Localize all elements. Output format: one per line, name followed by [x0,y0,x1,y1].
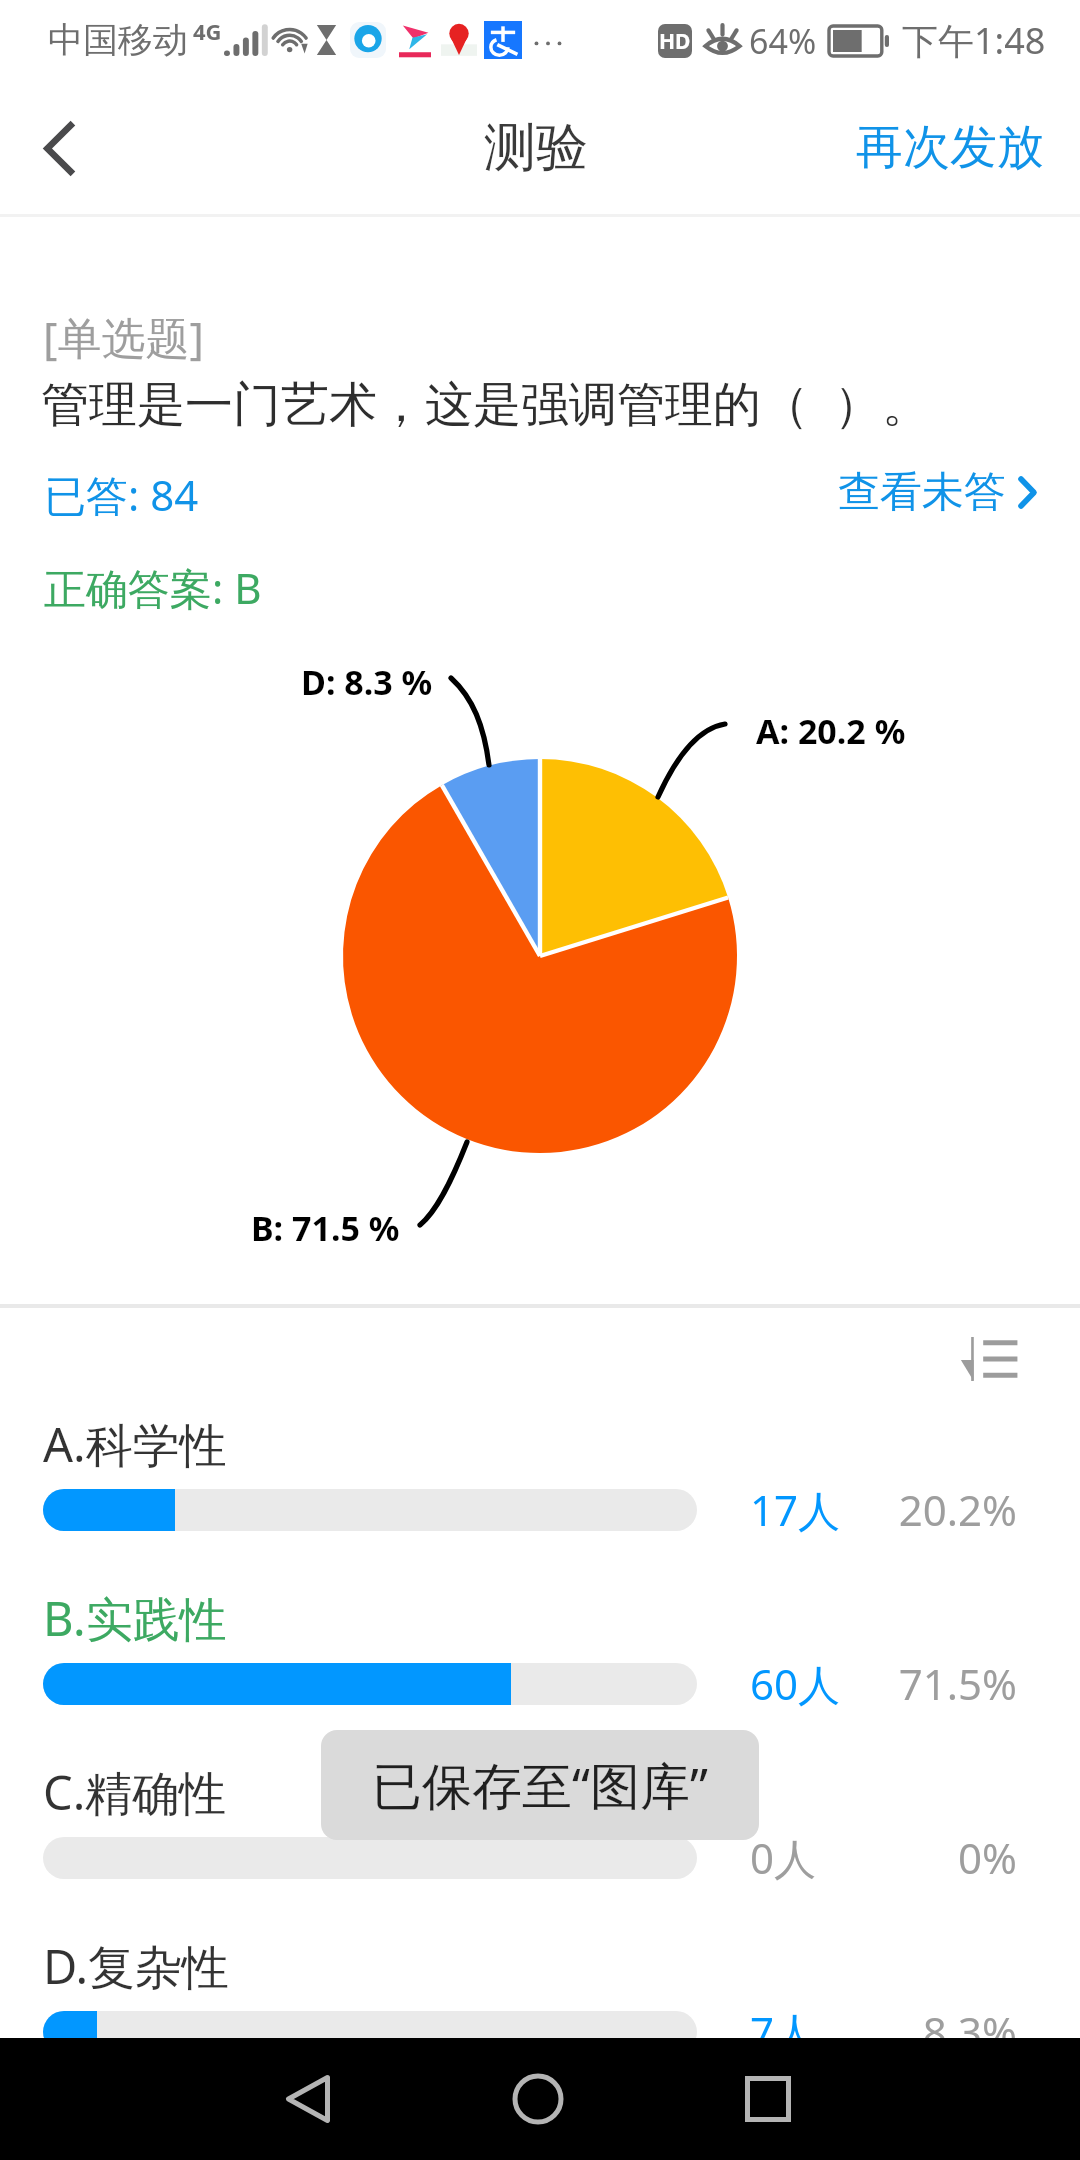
staticText: A.科学性 [43,1412,227,1476]
staticText: HD [659,27,691,56]
staticText: 7人 [750,2003,817,2060]
staticText: A: 20.2 % [756,708,906,754]
staticText: 0% [875,1829,1017,1886]
staticText: 查看未答 [838,466,1006,519]
staticText: 20.2% [875,1481,1017,1538]
staticText: 中国移动 [48,18,188,62]
staticText: B: 71.5 % [251,1205,400,1251]
button[interactable]: 再次发放 [850,112,1050,183]
button[interactable]: A.科学性 [0,1399,1080,1573]
staticText: 17人 [750,1481,841,1538]
staticText: 下午1:48 [902,16,1046,65]
staticText: 8.3% [875,2003,1017,2060]
staticText: 64% [749,18,817,64]
staticText: 已答: 84 [44,466,199,523]
button[interactable]: Home [483,2044,593,2154]
button[interactable]: Sort [958,1328,1020,1390]
staticText: 已保存至“图库” [372,1751,708,1819]
button[interactable]: C.精确性 [0,1747,1080,1921]
button[interactable]: Back [253,2044,363,2154]
staticText: D: 8.3 % [301,659,433,705]
staticText: 测验 [484,115,588,181]
staticText: 4G [193,16,222,46]
button[interactable]: Recents [713,2044,823,2154]
staticText: 管理是一门艺术，这是强调管理的（ ）。 [41,370,930,436]
button[interactable]: Back [4,93,114,203]
staticText: 再次发放 [856,118,1044,177]
staticText: 0人 [750,1829,817,1886]
staticText: B.实践性 [43,1586,227,1650]
button[interactable]: B.实践性 [0,1573,1080,1747]
staticText: 71.5% [875,1655,1017,1712]
button[interactable]: 查看未答 [838,466,1037,519]
staticText: 60人 [750,1655,841,1712]
staticText: 正确答案: B [44,559,262,616]
staticText: D.复杂性 [43,1934,230,1998]
staticText: C.精确性 [43,1760,227,1824]
staticText: [单选题] [43,307,204,367]
button[interactable]: D.复杂性 [0,1921,1080,2095]
